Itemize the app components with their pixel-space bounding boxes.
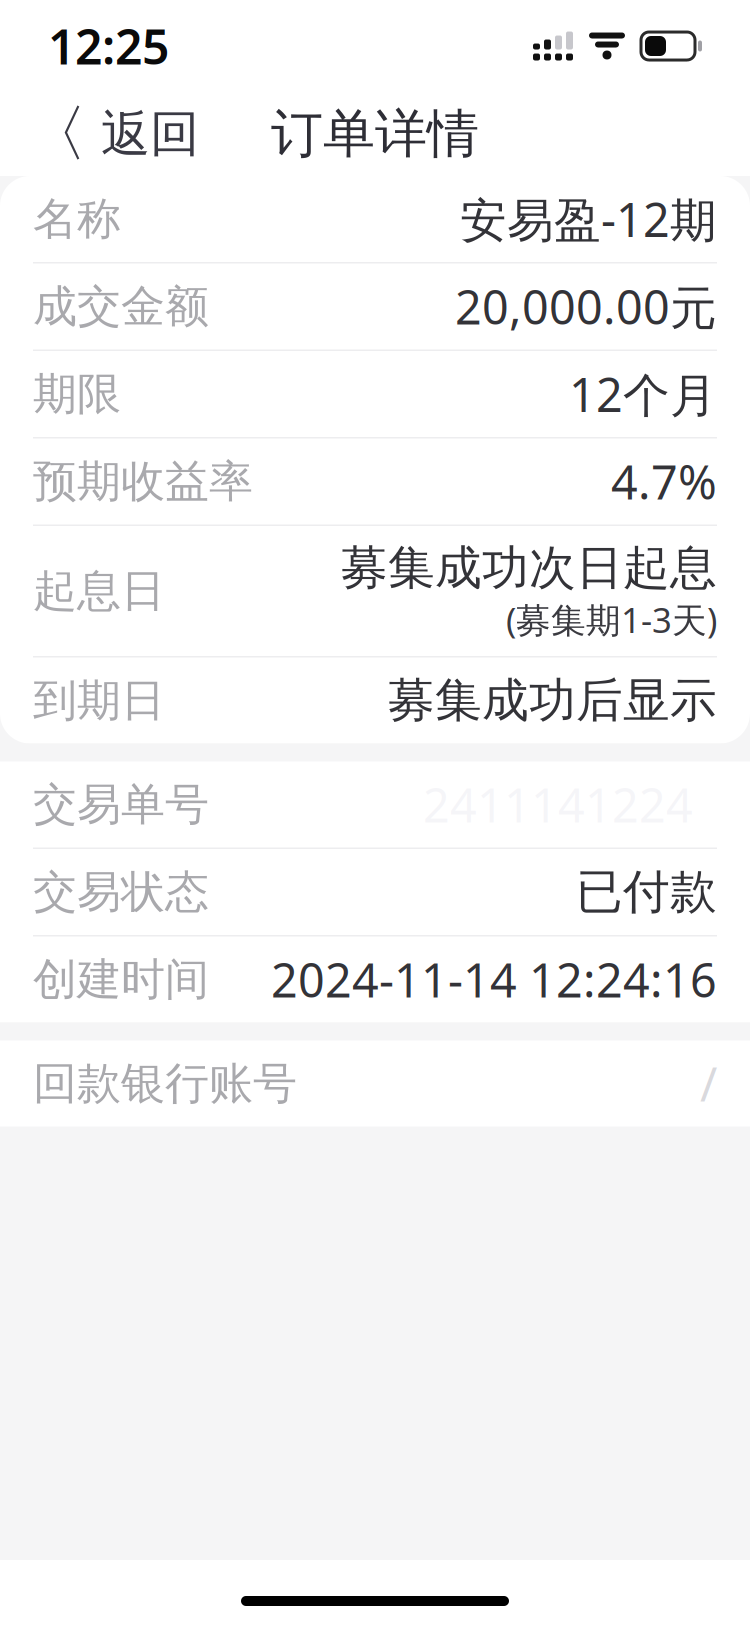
staticText: 2411141224 xyxy=(423,773,717,835)
staticText: 4.7% xyxy=(611,450,717,512)
staticText: 募集成功次日起息 xyxy=(341,539,717,597)
staticText: 已付款 xyxy=(576,863,717,921)
staticText: 成交金额 xyxy=(33,279,209,333)
staticText: 12:25 xyxy=(48,14,169,78)
staticText: 期限 xyxy=(33,367,121,421)
staticText: 订单详情 xyxy=(271,102,479,166)
staticText: 创建时间 xyxy=(33,952,209,1006)
staticText: 〈 xyxy=(26,96,87,172)
staticText: (募集期1-3天) xyxy=(506,597,717,643)
staticText: 交易状态 xyxy=(33,865,209,919)
staticText: 12个月 xyxy=(569,363,717,425)
staticText: 交易单号 xyxy=(33,777,209,831)
staticText: 募集成功后显示 xyxy=(388,672,717,729)
button[interactable]: 〈 xyxy=(0,92,223,176)
staticText: / xyxy=(700,1052,717,1114)
staticText: 20,000.00元 xyxy=(455,275,717,337)
staticText: 起息日 xyxy=(33,564,165,618)
staticText: 回款银行账号 xyxy=(33,1056,297,1110)
staticText: 返回 xyxy=(101,104,199,164)
staticText: 名称 xyxy=(33,192,121,246)
staticText: 安易盈-12期 xyxy=(460,188,717,250)
staticText: 2024-11-14 12:24:16 xyxy=(271,948,717,1010)
staticText: 预期收益率 xyxy=(33,454,253,508)
staticText: 到期日 xyxy=(33,673,165,727)
